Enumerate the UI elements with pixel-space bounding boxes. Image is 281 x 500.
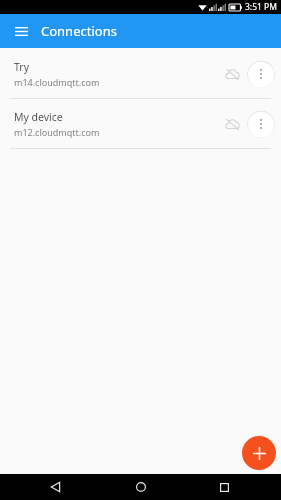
button[interactable]: Open navigation drawer <box>10 20 32 42</box>
button[interactable]: Home <box>130 476 152 498</box>
button[interactable]: More options <box>247 110 275 138</box>
button[interactable]: Back <box>44 476 66 498</box>
staticText: My device <box>14 110 63 124</box>
button[interactable]: Recent apps <box>213 476 235 498</box>
staticText: Try <box>14 60 30 74</box>
staticText: Connections <box>41 22 117 40</box>
staticText: m14.cloudmqtt.com <box>14 76 100 88</box>
staticText: 3:51 PM <box>245 1 277 13</box>
button[interactable]: Try <box>0 49 281 98</box>
staticText: m12.cloudmqtt.com <box>14 126 100 138</box>
button[interactable]: Add connection <box>242 436 276 470</box>
button[interactable]: More options <box>247 60 275 88</box>
button[interactable]: Disconnected <box>221 113 243 135</box>
button[interactable]: Disconnected <box>221 63 243 85</box>
button[interactable]: My device <box>0 99 281 148</box>
